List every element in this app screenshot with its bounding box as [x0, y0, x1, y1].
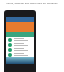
staticText: Photo, diagram and video tools for Faceb…	[6, 1, 58, 4]
button[interactable]	[6, 47, 34, 52]
button[interactable]	[6, 52, 34, 57]
button[interactable]	[6, 42, 34, 47]
button[interactable]	[6, 37, 34, 42]
